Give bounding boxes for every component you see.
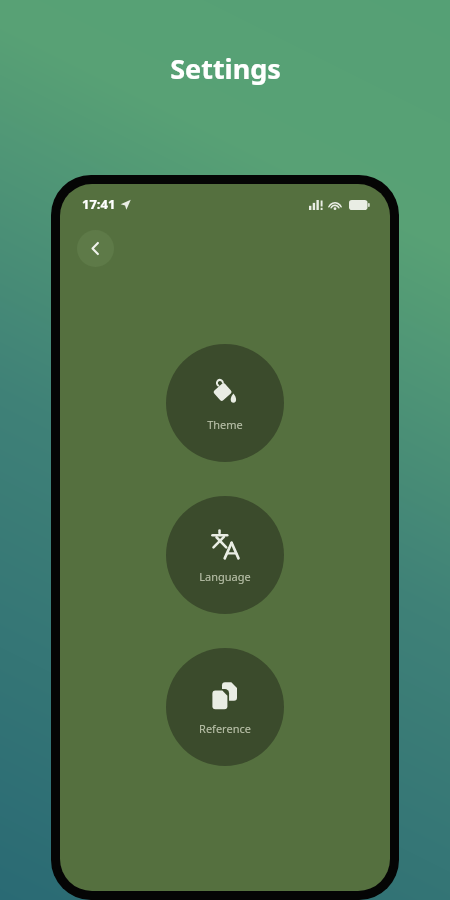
button[interactable]: Theme: [166, 344, 284, 462]
staticText: 17:41: [82, 195, 116, 213]
button[interactable]: Reference: [166, 648, 284, 766]
button[interactable]: Language: [166, 496, 284, 614]
staticText: Reference: [199, 721, 251, 736]
staticText: Theme: [207, 417, 243, 432]
button[interactable]: Back: [77, 230, 114, 267]
staticText: Settings: [170, 50, 281, 87]
staticText: Language: [199, 569, 251, 584]
